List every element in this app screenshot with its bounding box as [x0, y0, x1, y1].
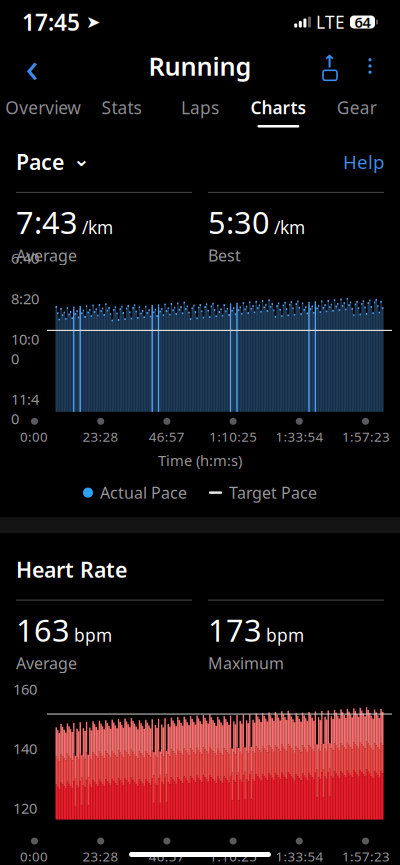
staticText: 160 — [13, 679, 37, 699]
staticText: Help — [343, 149, 384, 174]
staticText: Gear — [337, 96, 377, 119]
button[interactable]: Charts — [239, 90, 318, 133]
staticText: ➤ — [86, 12, 101, 32]
button[interactable]: Overview — [4, 90, 82, 133]
staticText: Overview — [5, 96, 81, 119]
staticText: 8:20 — [11, 289, 39, 308]
button[interactable]: Heart Rate — [16, 549, 127, 590]
staticText: Actual Pace — [100, 482, 187, 503]
staticText: Pace — [16, 147, 64, 176]
button[interactable]: Help — [331, 143, 384, 180]
staticText: Time (h:m:s) — [158, 450, 242, 470]
staticText: bpm — [74, 624, 112, 647]
staticText: ↑ — [322, 52, 337, 71]
staticText: 1:10:25 — [209, 848, 257, 865]
staticText: Laps — [181, 96, 219, 119]
staticText: 6:40 — [11, 248, 39, 268]
staticText: 173 — [208, 610, 262, 650]
staticText: ⌄ — [73, 148, 90, 170]
staticText: 163 — [16, 610, 70, 650]
staticText: 1:33:54 — [276, 428, 324, 445]
staticText: bpm — [266, 624, 304, 647]
staticText: /km — [82, 216, 113, 239]
button[interactable]: Share — [310, 44, 350, 88]
staticText: 5:30 — [208, 202, 270, 242]
staticText: ‹ — [25, 38, 38, 94]
button[interactable]: Pace — [16, 141, 90, 182]
button[interactable]: Laps — [161, 90, 239, 133]
staticText: Maximum — [208, 652, 284, 673]
staticText: /km — [274, 216, 305, 239]
staticText: 140 — [13, 739, 37, 758]
staticText: 46:57 — [149, 848, 185, 865]
staticText: Average — [16, 652, 77, 673]
button[interactable]: Back — [10, 44, 54, 88]
staticText: 120 — [13, 798, 37, 818]
staticText: 17:45 — [22, 7, 80, 37]
staticText: Heart Rate — [16, 555, 127, 584]
staticText: 46:57 — [149, 428, 185, 445]
staticText: 1:57:23 — [342, 428, 390, 445]
staticText: 7:43 — [16, 202, 78, 242]
staticText: 11:40 — [11, 389, 39, 428]
button[interactable]: Gear — [318, 90, 396, 133]
button[interactable]: More options — [350, 44, 390, 88]
staticText: Charts — [250, 96, 306, 119]
staticText: 64 — [354, 12, 370, 32]
staticText: 0:00 — [20, 428, 48, 445]
button[interactable]: Stats — [82, 90, 161, 133]
staticText: Best — [208, 245, 241, 266]
staticText: 1:33:54 — [276, 848, 324, 865]
staticText: Running — [148, 49, 251, 83]
staticText: Average — [16, 245, 77, 266]
staticText: 0:00 — [20, 848, 48, 865]
staticText: LTE — [316, 10, 345, 33]
staticText: 10:00 — [11, 329, 39, 368]
staticText: 1:10:25 — [209, 428, 257, 445]
staticText: 23:28 — [82, 428, 118, 445]
staticText: 1:57:23 — [342, 848, 390, 865]
staticText: 23:28 — [82, 848, 118, 865]
staticText: Target Pace — [229, 482, 317, 503]
staticText: Stats — [102, 96, 142, 119]
